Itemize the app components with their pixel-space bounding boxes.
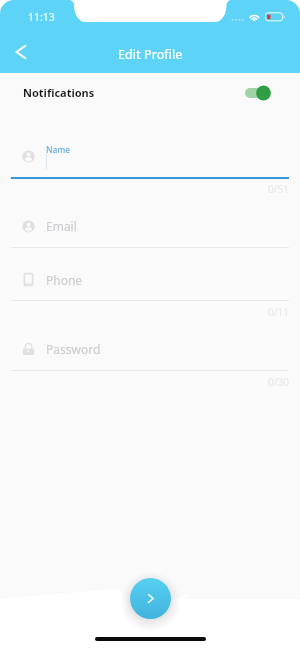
staticText: Name (46, 144, 70, 156)
staticText: Notifications (23, 85, 95, 100)
staticText: Edit Profile (118, 45, 183, 62)
button[interactable]: Next (130, 578, 171, 619)
staticText: 11:13 (28, 10, 55, 24)
staticText: 0/11 (268, 305, 289, 319)
button[interactable]: Back (7, 38, 34, 65)
button[interactable]: Notifications (0, 77, 300, 107)
staticText: 0/30 (268, 375, 289, 389)
staticText: Email (46, 218, 77, 234)
staticText: Password (46, 341, 101, 357)
staticText: Phone (46, 272, 83, 288)
staticText: 0/51 (268, 182, 289, 196)
